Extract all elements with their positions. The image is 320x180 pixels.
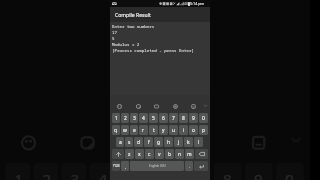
staticText: m	[187, 151, 192, 158]
staticText: 0	[202, 115, 205, 122]
button[interactable]: 0	[199, 113, 208, 123]
button[interactable]: GIF	[151, 101, 162, 112]
staticText: z	[128, 151, 131, 158]
staticText: s	[128, 139, 131, 146]
staticText: c	[148, 151, 151, 158]
staticText: p	[202, 127, 206, 134]
button[interactable]: Compile Result	[110, 7, 210, 22]
button[interactable]: 4	[89, 163, 117, 180]
button[interactable]: c	[145, 149, 154, 159]
button[interactable]: y	[159, 125, 168, 135]
button[interactable]: 1	[5, 163, 30, 180]
button[interactable]: v	[155, 149, 164, 159]
staticText: u	[172, 127, 176, 134]
staticText: 17	[112, 30, 117, 36]
button[interactable]: g	[154, 137, 163, 147]
button[interactable]: ?123	[112, 161, 120, 171]
button[interactable]: Enter	[194, 161, 208, 171]
staticText: 5	[152, 115, 155, 122]
button[interactable]: 7	[182, 163, 210, 180]
button[interactable]: l	[194, 137, 203, 147]
button[interactable]: Expand toolbar	[202, 102, 208, 108]
button[interactable]: w	[121, 125, 129, 135]
button[interactable]: 5	[120, 163, 148, 180]
button[interactable]: 9	[189, 113, 198, 123]
staticText: d	[137, 139, 141, 146]
button[interactable]: Settings	[170, 101, 181, 112]
staticText: 7	[172, 115, 175, 122]
button[interactable]: 3	[61, 163, 86, 180]
button[interactable]: i	[179, 125, 188, 135]
button[interactable]: 2	[33, 163, 58, 180]
button[interactable]: 1	[112, 113, 120, 123]
button[interactable]: GIF	[126, 126, 161, 160]
button[interactable]: Emoji	[11, 126, 46, 160]
button[interactable]: 3	[130, 113, 138, 123]
staticText: 6	[161, 169, 170, 180]
staticText: w	[123, 127, 127, 134]
button[interactable]: 9	[245, 163, 273, 180]
staticText: y	[162, 127, 165, 134]
button[interactable]: English (US)	[130, 161, 184, 171]
staticText: t	[153, 127, 155, 134]
button[interactable]: t	[149, 125, 158, 135]
staticText: 9	[192, 115, 195, 122]
button[interactable]: 2	[121, 113, 129, 123]
button[interactable]: 6	[151, 163, 179, 180]
staticText: 3	[133, 115, 136, 122]
button[interactable]: Shift	[112, 149, 124, 159]
button[interactable]: p	[199, 125, 208, 135]
button[interactable]: Backspace	[195, 149, 208, 159]
button[interactable]: Clipboard	[188, 101, 199, 112]
button[interactable]: o	[189, 125, 198, 135]
button[interactable]: s	[125, 137, 133, 147]
button[interactable]: Settings	[186, 126, 220, 160]
staticText: 4G	[184, 1, 189, 5]
button[interactable]: r	[139, 125, 148, 135]
button[interactable]: n	[175, 149, 184, 159]
button[interactable]: h	[164, 137, 173, 147]
staticText: Modulus = 2	[112, 42, 140, 48]
button[interactable]: j	[174, 137, 183, 147]
button[interactable]: u	[169, 125, 178, 135]
button[interactable]: 0	[276, 163, 304, 180]
button[interactable]: ,	[121, 161, 129, 171]
button[interactable]: q	[112, 125, 120, 135]
staticText: 6	[162, 115, 165, 122]
staticText: g	[157, 139, 161, 146]
staticText: k	[187, 139, 190, 146]
button[interactable]: x	[135, 149, 144, 159]
button[interactable]: d	[134, 137, 143, 147]
button[interactable]: .	[185, 161, 193, 171]
button[interactable]: e	[130, 125, 138, 135]
staticText: i	[183, 127, 185, 134]
button[interactable]: a	[116, 137, 124, 147]
button[interactable]: Emoji	[114, 101, 125, 112]
staticText: 1	[115, 115, 118, 122]
button[interactable]: Clipboard	[242, 126, 276, 160]
staticText: 4	[98, 169, 108, 180]
staticText: [Process completed - press Enter]	[112, 48, 194, 54]
button[interactable]: 4	[139, 113, 148, 123]
button[interactable]: 7	[169, 113, 178, 123]
staticText: 0	[285, 169, 294, 180]
button[interactable]: 8	[179, 113, 188, 123]
button[interactable]: Stickers	[70, 126, 105, 160]
button[interactable]: k	[184, 137, 193, 147]
staticText: 7	[192, 169, 201, 180]
staticText: 4	[142, 115, 145, 122]
staticText: l	[198, 139, 200, 146]
button[interactable]: 5	[149, 113, 158, 123]
button[interactable]: z	[125, 149, 134, 159]
button[interactable]: 6	[159, 113, 168, 123]
button[interactable]: Stickers	[133, 101, 144, 112]
staticText: English (US)	[149, 164, 166, 168]
button[interactable]: m	[185, 149, 194, 159]
staticText: 1	[15, 169, 24, 180]
button[interactable]: f	[144, 137, 153, 147]
staticText: 5	[112, 36, 115, 42]
button[interactable]: 8	[214, 163, 242, 180]
button[interactable]: b	[165, 149, 174, 159]
staticText: e	[133, 127, 136, 134]
